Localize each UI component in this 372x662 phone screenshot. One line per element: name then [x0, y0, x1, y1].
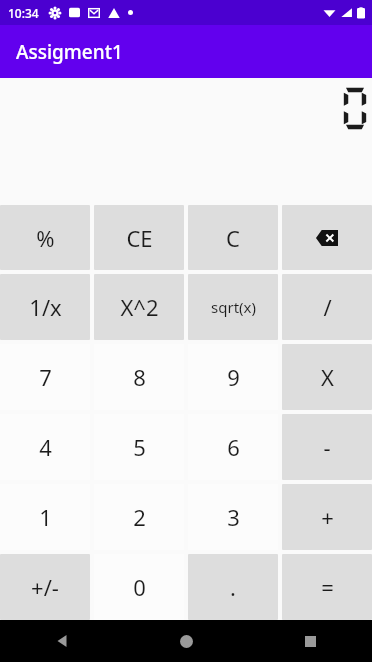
staticText: 2: [133, 502, 146, 532]
staticText: /: [323, 292, 332, 322]
button[interactable]: /: [282, 274, 372, 340]
staticText: 1/x: [29, 292, 62, 322]
staticText: %: [36, 223, 55, 253]
button[interactable]: 9: [188, 344, 278, 410]
button[interactable]: X^2: [94, 274, 184, 340]
button[interactable]: 1: [0, 484, 90, 550]
button[interactable]: 1/x: [0, 274, 90, 340]
button[interactable]: +/-: [0, 554, 90, 620]
staticText: 1: [39, 502, 52, 532]
button[interactable]: 7: [0, 344, 90, 410]
staticText: .: [230, 572, 236, 602]
staticText: 10:34: [8, 5, 39, 21]
staticText: 3: [227, 502, 240, 532]
button[interactable]: =: [282, 554, 372, 620]
staticText: +: [321, 502, 334, 532]
button[interactable]: 2: [94, 484, 184, 550]
button[interactable]: Back: [0, 620, 124, 662]
button[interactable]: 8: [94, 344, 184, 410]
staticText: =: [321, 572, 334, 602]
staticText: X: [321, 362, 334, 392]
button[interactable]: sqrt(x): [188, 274, 278, 340]
button[interactable]: Backspace: [282, 205, 372, 270]
staticText: 9: [227, 362, 240, 392]
button[interactable]: CE: [94, 205, 184, 270]
button[interactable]: C: [188, 205, 278, 270]
staticText: 8: [133, 362, 146, 392]
staticText: -: [323, 432, 331, 462]
button[interactable]: -: [282, 414, 372, 480]
button[interactable]: +: [282, 484, 372, 550]
button[interactable]: .: [188, 554, 278, 620]
staticText: 5: [133, 432, 146, 462]
staticText: +/-: [31, 572, 59, 602]
staticText: sqrt(x): [211, 297, 256, 317]
staticText: 6: [227, 432, 240, 462]
button[interactable]: X: [282, 344, 372, 410]
staticText: 7: [39, 362, 52, 392]
staticText: 0: [133, 572, 146, 602]
button[interactable]: 0: [94, 554, 184, 620]
button[interactable]: Home: [124, 620, 248, 662]
button[interactable]: Recent apps: [248, 620, 372, 662]
button[interactable]: 6: [188, 414, 278, 480]
staticText: CE: [126, 223, 153, 253]
staticText: X^2: [120, 292, 159, 322]
staticText: 4: [39, 432, 52, 462]
button[interactable]: 4: [0, 414, 90, 480]
button[interactable]: 5: [94, 414, 184, 480]
staticText: Assigment1: [16, 39, 123, 65]
staticText: C: [226, 223, 240, 253]
button[interactable]: %: [0, 205, 90, 270]
button[interactable]: 3: [188, 484, 278, 550]
